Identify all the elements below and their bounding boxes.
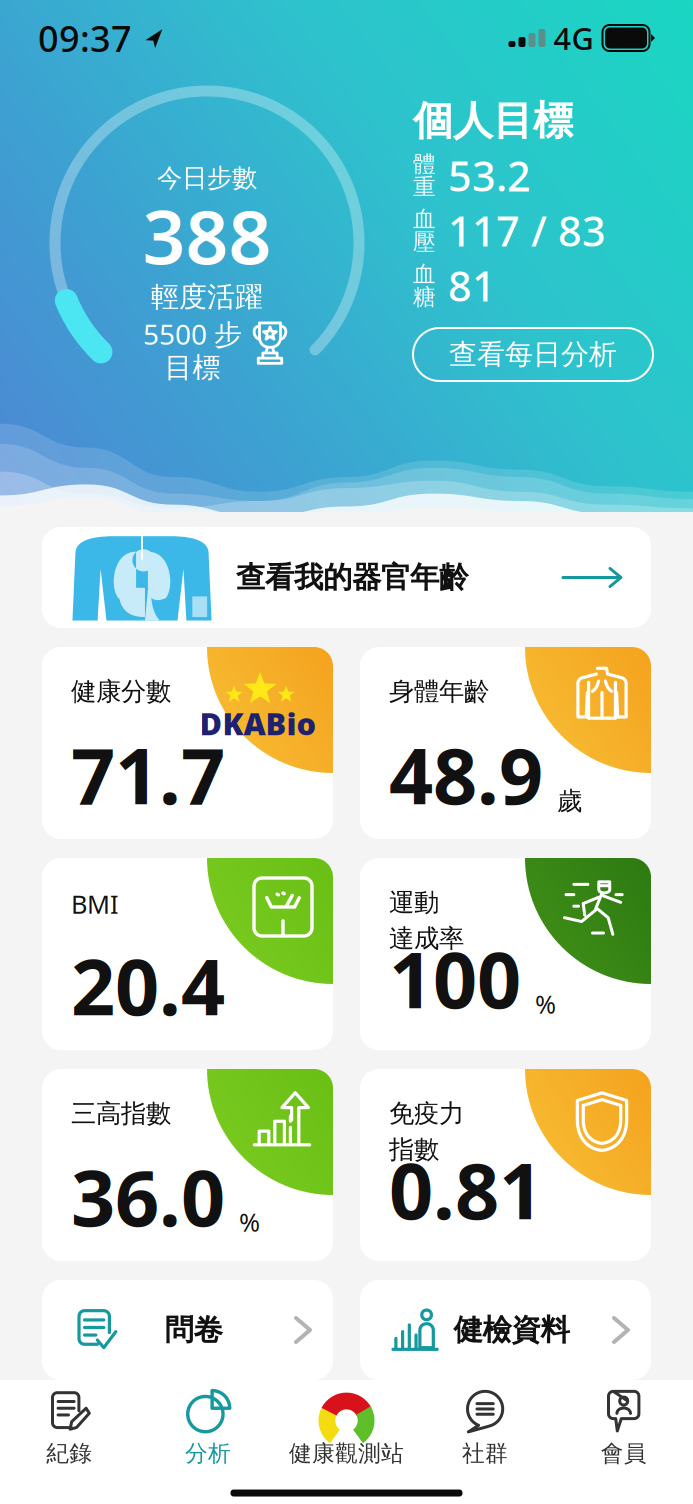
staticText: 運動 [389,887,439,918]
button[interactable]: 社群 [416,1380,554,1476]
staticText: 個人目標 [413,96,573,145]
staticText: 血 [413,205,436,233]
button[interactable]: 健檢資料 [360,1280,651,1380]
button[interactable]: BMI [42,858,333,1050]
staticText: 今日步數 [157,162,257,193]
button[interactable]: 三高指數 [42,1069,333,1261]
staticText: 壓 [413,228,436,256]
staticText: 分析 [185,1440,231,1467]
staticText: 問卷 [164,1312,222,1348]
staticText: 歲 [557,786,582,817]
staticText: 117 / 83 [448,203,606,258]
button[interactable]: 查看每日分析 [413,328,653,381]
staticText: 會員 [601,1440,647,1467]
staticText: 4G [553,18,593,58]
button[interactable]: 會員 [554,1380,693,1476]
staticText: 重 [413,173,436,201]
staticText: 糖 [413,283,436,311]
staticText: 輕度活躍 [151,280,263,314]
staticText: DKABio [199,703,316,744]
staticText: 血 [413,260,436,288]
staticText: 48.9 [389,723,543,826]
staticText: 查看每日分析 [449,337,617,372]
button[interactable]: 問卷 [42,1280,333,1380]
staticText: 36.0 [71,1145,225,1248]
button[interactable]: 運動 [360,858,651,1050]
staticText: 53.2 [448,148,531,203]
button[interactable]: DKABio [42,647,333,839]
button[interactable]: 紀錄 [0,1380,139,1476]
staticText: 免疫力 [389,1098,464,1129]
staticText: 0.81 [389,1138,543,1241]
staticText: 指數 [389,1134,439,1165]
staticText: 20.4 [71,934,225,1037]
button[interactable]: 健康觀測站 [277,1380,416,1476]
staticText: 5500 步 [143,315,242,352]
staticText: % [535,987,556,1021]
staticText: 388 [142,185,271,285]
staticText: 健康分數 [71,676,171,707]
button[interactable]: 分析 [139,1380,277,1476]
button[interactable]: 免疫力 [360,1069,651,1261]
button[interactable]: 身體年齡 [360,647,651,839]
staticText: 81 [448,258,496,313]
staticText: 目標 [164,350,220,385]
button[interactable]: 查看我的器官年齡 [42,527,651,628]
staticText: 09:37 [38,14,132,62]
staticText: 紀錄 [46,1440,92,1467]
staticText: 身體年齡 [389,676,489,707]
staticText: 71.7 [71,723,225,826]
staticText: 100 [389,927,521,1030]
staticText: 健檢資料 [453,1312,569,1348]
staticText: 社群 [462,1440,508,1467]
staticText: 達成率 [389,923,464,954]
staticText: BMI [71,887,119,921]
staticText: 體 [413,150,436,178]
staticText: 健康觀測站 [289,1440,404,1467]
staticText: 三高指數 [71,1098,171,1129]
staticText: % [239,1205,260,1239]
staticText: 查看我的器官年齡 [236,559,468,595]
